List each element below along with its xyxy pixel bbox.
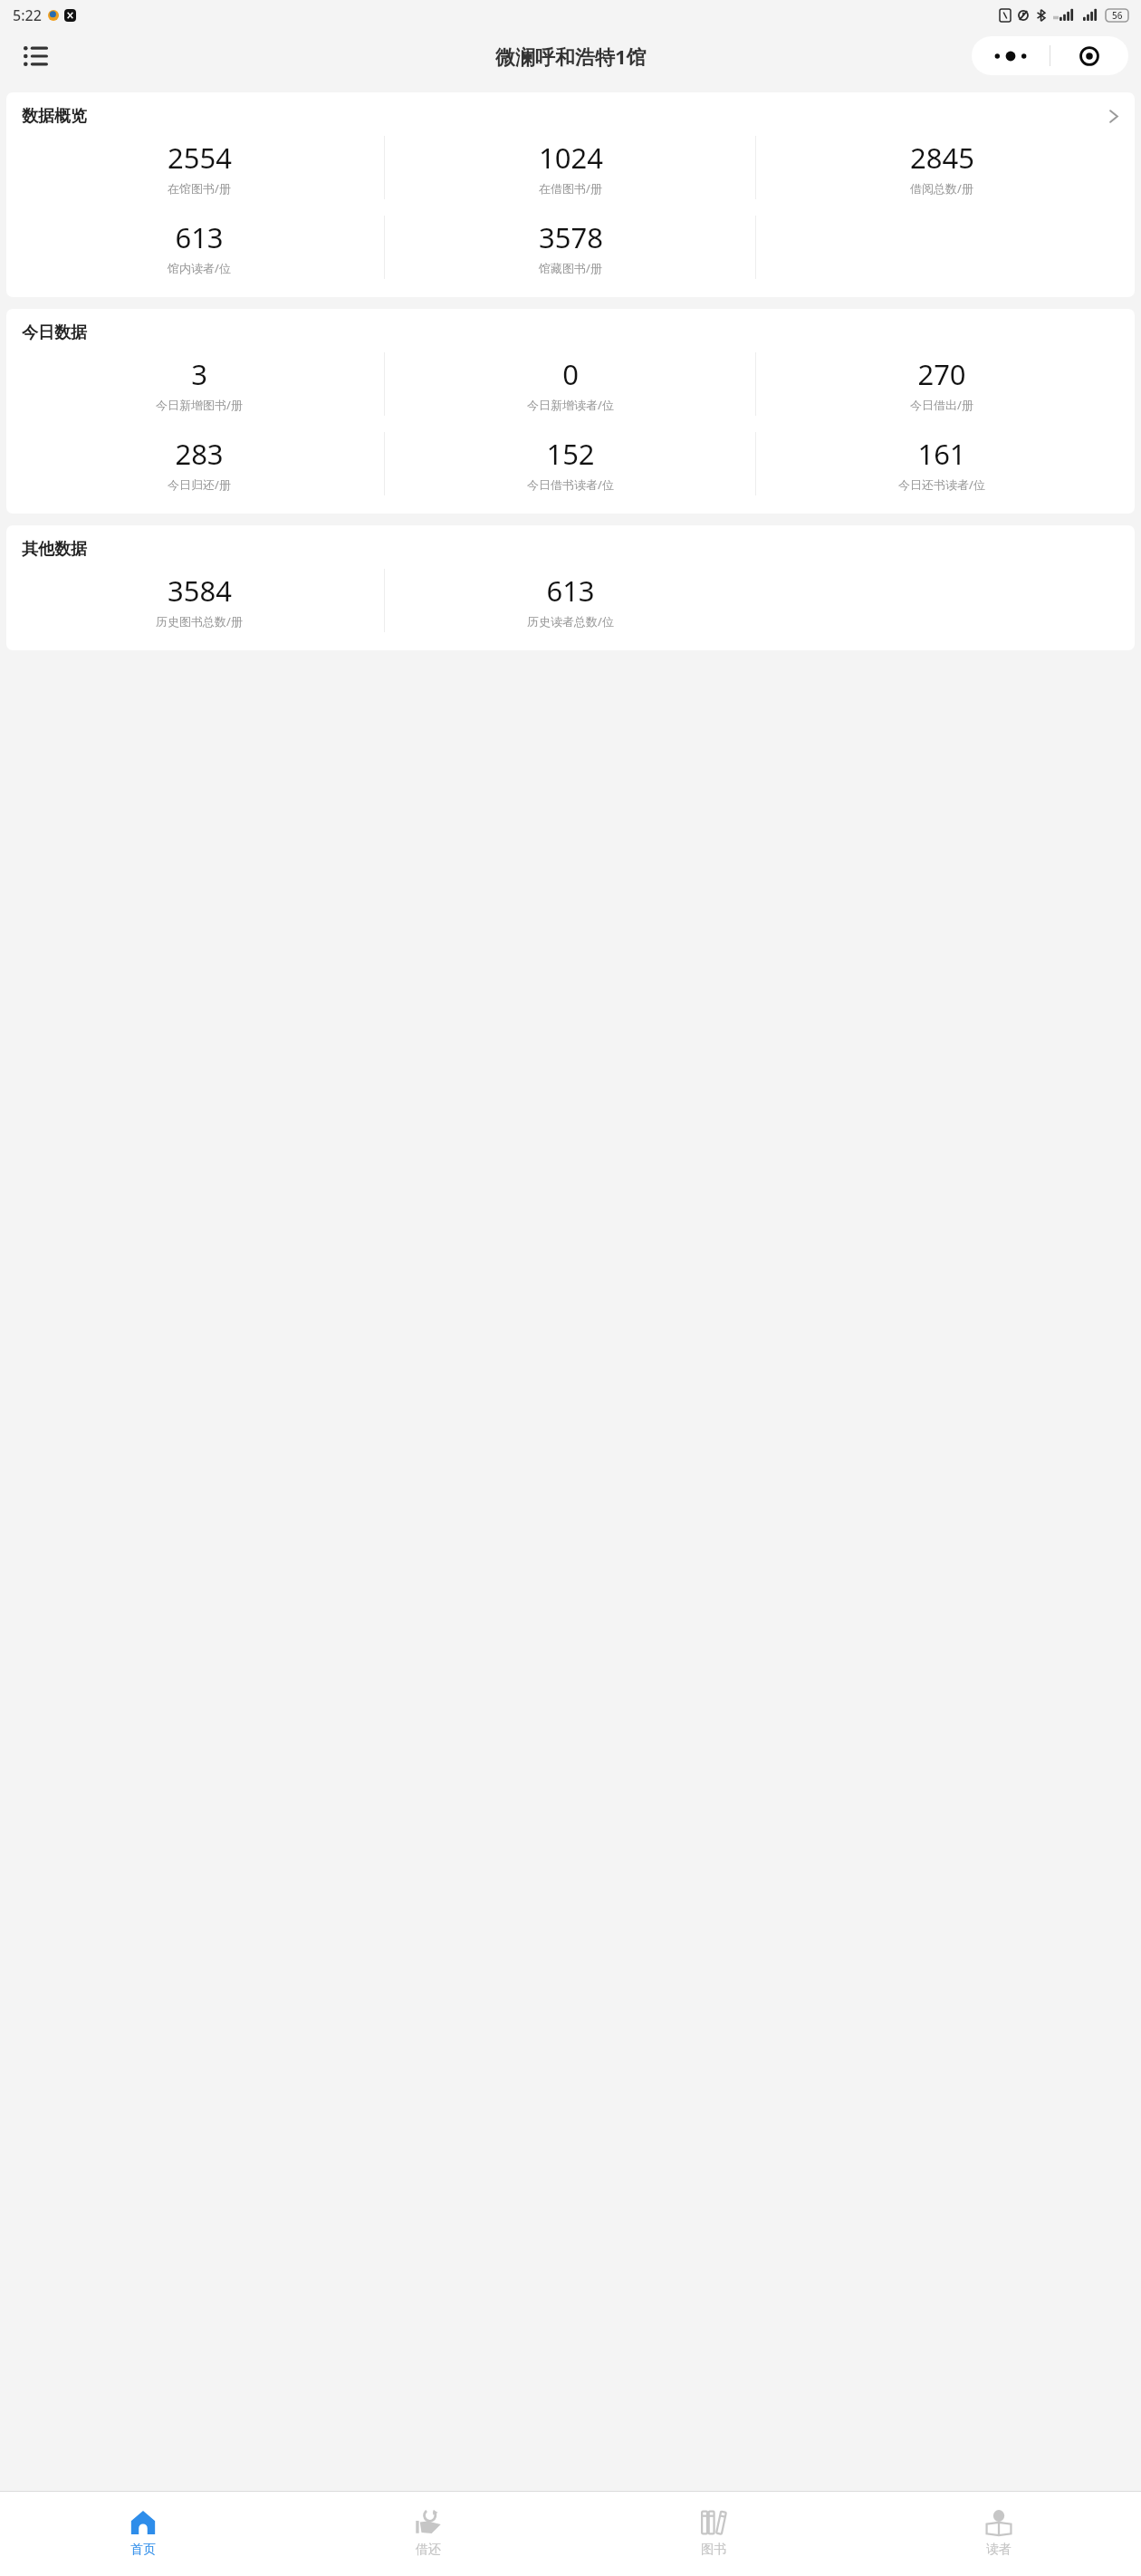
staticText: 613 <box>546 572 595 610</box>
staticText: 馆内读者/位 <box>168 260 231 276</box>
staticText: 读者 <box>986 2542 1012 2558</box>
staticText: 3584 <box>168 572 232 610</box>
staticText: 2554 <box>168 139 232 177</box>
staticText: 今日数据 <box>22 322 87 343</box>
staticText: 5:22 <box>13 5 42 25</box>
button[interactable]: 数据概览 <box>6 92 1135 297</box>
staticText: 今日还书读者/位 <box>898 476 985 493</box>
button[interactable]: 今日数据 <box>6 309 1135 514</box>
staticText: 今日借书读者/位 <box>527 476 614 493</box>
staticText: 今日归还/册 <box>168 476 231 493</box>
button[interactable]: Menu <box>14 35 56 77</box>
staticText: 0 <box>562 355 579 393</box>
staticText: 其他数据 <box>22 539 87 560</box>
staticText: 在借图书/册 <box>539 180 602 197</box>
staticText: 历史图书总数/册 <box>156 613 243 630</box>
staticText: 3 <box>191 355 207 393</box>
button[interactable]: 图书 <box>570 2492 856 2576</box>
button[interactable]: 首页 <box>0 2492 285 2576</box>
staticText: 馆藏图书/册 <box>539 260 602 276</box>
staticText: 数据概览 <box>22 106 87 127</box>
staticText: 613 <box>175 218 224 256</box>
button[interactable]: 读者 <box>856 2492 1141 2576</box>
staticText: 今日借出/册 <box>910 397 973 413</box>
staticText: 270 <box>917 355 966 393</box>
button[interactable]: Close <box>1050 36 1128 75</box>
staticText: 1024 <box>539 139 603 177</box>
staticText: 283 <box>175 435 224 473</box>
staticText: 2845 <box>910 139 974 177</box>
button[interactable]: 借还 <box>285 2492 570 2576</box>
staticText: 3578 <box>539 218 603 256</box>
staticText: 微澜呼和浩特1馆 <box>495 43 647 70</box>
staticText: 历史读者总数/位 <box>527 613 614 630</box>
staticText: 今日新增读者/位 <box>527 397 614 413</box>
staticText: 首页 <box>130 2542 156 2558</box>
button[interactable]: 其他数据 <box>6 525 1135 650</box>
staticText: 图书 <box>701 2542 726 2558</box>
staticText: 56 <box>1112 9 1123 22</box>
staticText: 在馆图书/册 <box>168 180 231 197</box>
staticText: 借还 <box>416 2542 441 2558</box>
button[interactable]: More <box>972 36 1050 75</box>
staticText: 161 <box>917 435 966 473</box>
staticText: 152 <box>546 435 595 473</box>
staticText: 今日新增图书/册 <box>156 397 243 413</box>
staticText: 借阅总数/册 <box>910 180 973 197</box>
